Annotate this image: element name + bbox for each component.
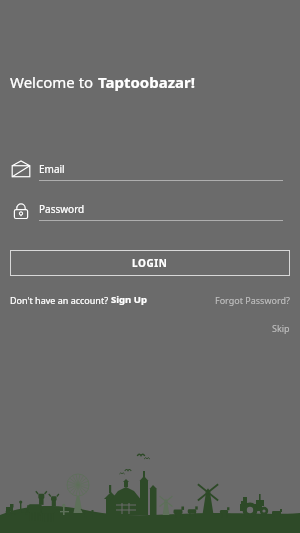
staticText: Skip xyxy=(272,322,290,334)
staticText: Taptoobazar! xyxy=(98,72,195,92)
button[interactable]: Forgot Password? xyxy=(215,294,290,306)
other: Password xyxy=(10,200,32,222)
staticText: Don't have an account? xyxy=(10,294,111,306)
other: Email xyxy=(10,160,32,182)
button[interactable]: Password xyxy=(10,200,283,222)
staticText: Password xyxy=(39,202,85,216)
staticText: Welcome to xyxy=(10,72,98,92)
staticText: LOGIN xyxy=(132,256,168,270)
staticText: Sign Up xyxy=(111,293,147,306)
button[interactable]: Don't have an account? xyxy=(10,293,147,306)
staticText: Email xyxy=(39,162,65,176)
button[interactable]: LOGIN xyxy=(10,250,290,276)
button[interactable]: Email xyxy=(10,160,283,182)
staticText: Forgot Password? xyxy=(215,294,290,306)
button[interactable]: Skip xyxy=(272,322,290,334)
